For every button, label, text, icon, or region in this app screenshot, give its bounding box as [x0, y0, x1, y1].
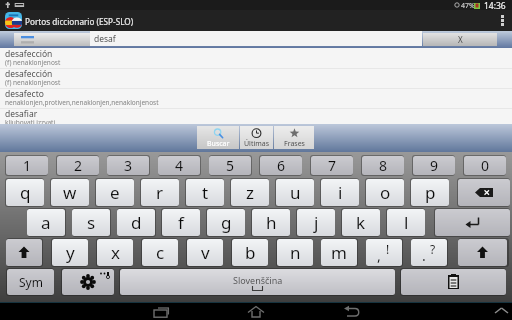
button[interactable]: Últimas [240, 126, 273, 149]
button[interactable]: p [411, 179, 449, 206]
button[interactable]: Buscar [197, 126, 239, 149]
button[interactable]: 1 [6, 156, 48, 175]
button[interactable]: b [232, 239, 268, 266]
staticText: 2 [74, 156, 83, 175]
button[interactable]: Sym [7, 269, 54, 295]
staticText: j [314, 211, 319, 234]
staticText: 47% [461, 1, 475, 11]
staticText: ! [386, 241, 390, 257]
button[interactable]: desafección [0, 68, 512, 88]
button[interactable]: g [207, 209, 245, 236]
staticText: z [246, 181, 254, 204]
button[interactable]: Home [242, 302, 270, 320]
button[interactable]: s [72, 209, 110, 236]
button[interactable]: i [321, 179, 359, 206]
button[interactable]: Back [339, 302, 367, 320]
staticText: desafección [5, 68, 53, 80]
staticText: 0 [481, 156, 490, 175]
button[interactable]: 5 [209, 156, 251, 175]
staticText: g [221, 211, 232, 234]
staticText: desafecto [5, 88, 44, 100]
staticText: (f) nenaklonjenost [5, 58, 61, 67]
staticText: s [87, 211, 96, 234]
staticText: 8 [379, 156, 388, 175]
button[interactable]: w [51, 179, 89, 206]
button[interactable]: 0 [464, 156, 506, 175]
button[interactable]: desafiar [0, 108, 512, 128]
staticText: o [380, 181, 391, 204]
button[interactable]: desafecto [0, 88, 512, 108]
button[interactable]: desafección [0, 48, 512, 68]
button[interactable]: Shift [6, 239, 42, 266]
button[interactable]: More options [492, 10, 512, 31]
staticText: . [422, 246, 426, 265]
button[interactable]: d [117, 209, 155, 236]
button[interactable]: 6 [260, 156, 302, 175]
button[interactable]: u [276, 179, 314, 206]
staticText: u [290, 181, 301, 204]
button[interactable]: l [387, 209, 425, 236]
button[interactable]: e [96, 179, 134, 206]
button[interactable]: n [277, 239, 313, 266]
button[interactable]: Enter [435, 209, 510, 236]
staticText: i [338, 181, 343, 204]
button[interactable]: o [366, 179, 404, 206]
staticText: f [178, 211, 184, 234]
button[interactable]: Frases [274, 126, 314, 149]
button[interactable]: 7 [311, 156, 353, 175]
button[interactable]: h [252, 209, 290, 236]
button[interactable]: Keyboard settings [62, 269, 114, 295]
button[interactable]: . [411, 239, 447, 266]
staticText: 6 [277, 156, 286, 175]
button[interactable] [14, 33, 90, 46]
staticText: Frases [284, 139, 305, 149]
button[interactable]: 3 [107, 156, 149, 175]
staticText: kljubovati,izzvati [5, 118, 56, 127]
staticText: x [111, 241, 120, 264]
button[interactable]: v [187, 239, 223, 266]
button[interactable]: c [142, 239, 178, 266]
button[interactable]: desaf [90, 31, 422, 46]
staticText: w [63, 181, 77, 204]
button[interactable]: 2 [57, 156, 99, 175]
button[interactable]: 9 [413, 156, 455, 175]
button[interactable]: q [6, 179, 44, 206]
staticText: (f) nenaklonjenost [5, 78, 61, 87]
staticText: e [110, 181, 120, 204]
button[interactable]: t [186, 179, 224, 206]
button[interactable]: Clipboard [401, 269, 506, 295]
button[interactable]: Shift [458, 239, 507, 266]
staticText: Últimas [244, 139, 270, 149]
button[interactable]: Recents [146, 302, 174, 320]
button[interactable]: Space [120, 269, 395, 295]
button[interactable]: r [141, 179, 179, 206]
button[interactable]: a [27, 209, 65, 236]
button[interactable]: k [342, 209, 380, 236]
staticText: v [201, 241, 210, 264]
staticText: , [377, 246, 381, 265]
button[interactable]: 8 [362, 156, 404, 175]
staticText: Portos diccionario (ESP-SLO) [25, 16, 134, 27]
button[interactable]: m [321, 239, 357, 266]
staticText: desafiar [5, 108, 38, 120]
button[interactable]: j [297, 209, 335, 236]
button[interactable]: X [423, 33, 497, 46]
staticText: a [41, 211, 51, 234]
button[interactable]: 4 [158, 156, 200, 175]
staticText: b [245, 241, 256, 264]
staticText: nenaklonjen,protiven,nenaklonjen,nenaklo… [5, 98, 159, 107]
staticText: r [156, 181, 164, 204]
staticText: X [458, 34, 463, 45]
staticText: t [202, 181, 209, 204]
button[interactable]: y [52, 239, 88, 266]
button[interactable]: , [366, 239, 402, 266]
button[interactable]: Hide keyboard [489, 302, 512, 320]
button[interactable]: Backspace [458, 179, 510, 206]
button[interactable]: z [231, 179, 269, 206]
staticText: 5 [226, 156, 235, 175]
button[interactable]: f [162, 209, 200, 236]
staticText: Slovenščina [233, 274, 283, 286]
button[interactable]: x [97, 239, 133, 266]
staticText: 1 [23, 156, 32, 175]
staticText: p [425, 181, 436, 204]
